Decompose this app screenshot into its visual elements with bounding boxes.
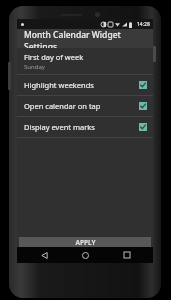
staticText: Month Calendar Widget Settings [24, 29, 153, 48]
staticText: APPLY [75, 238, 96, 247]
staticText: First day of week [24, 52, 84, 62]
other: Checked [139, 102, 147, 110]
button[interactable]: Back [29, 247, 59, 263]
button[interactable]: APPLY [19, 237, 151, 247]
staticText: 14:28 [137, 21, 150, 28]
button[interactable]: Recent apps [112, 247, 142, 263]
button[interactable]: Month Calendar Widget Settings [17, 29, 153, 48]
button[interactable]: Open calendar on tap [17, 96, 153, 116]
staticText: Display event marks [24, 122, 139, 132]
other: Checked [139, 81, 147, 89]
other: Checked [139, 123, 147, 131]
staticText: Highlight weekends [24, 80, 139, 90]
staticText: Open calendar on tap [24, 101, 139, 111]
button[interactable]: Home [70, 247, 100, 263]
staticText: Sunday [24, 63, 45, 71]
button[interactable]: Highlight weekends [17, 75, 153, 95]
button[interactable]: Display event marks [17, 117, 153, 137]
button[interactable]: First day of week [17, 48, 153, 74]
